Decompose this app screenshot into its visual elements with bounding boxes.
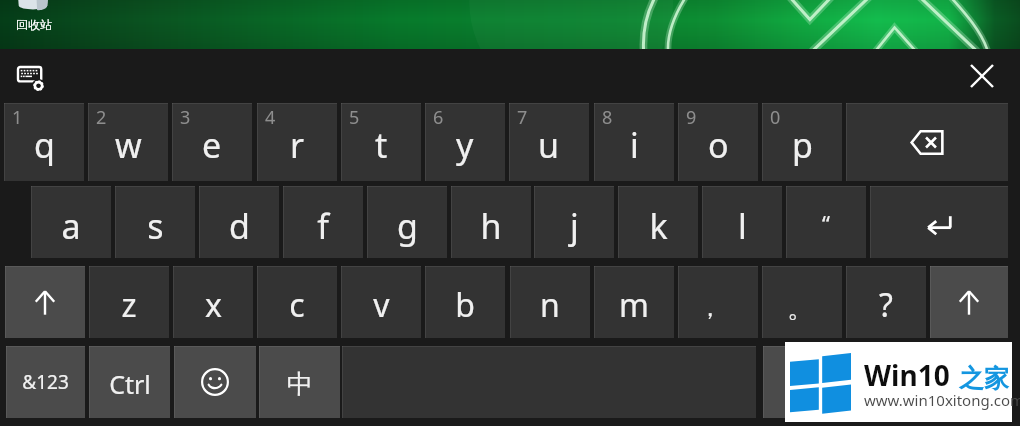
button[interactable]: 7 xyxy=(509,103,589,181)
button[interactable]: ， xyxy=(678,266,758,338)
button[interactable]: ? xyxy=(846,266,926,338)
staticText: 2 xyxy=(96,105,107,130)
button[interactable]: v xyxy=(341,266,421,338)
staticText: www.win10xitong.com xyxy=(864,390,1020,410)
button[interactable]: k xyxy=(618,186,698,258)
button[interactable]: b xyxy=(425,266,505,338)
staticText: x xyxy=(205,283,222,327)
button[interactable]: z xyxy=(89,266,169,338)
button[interactable]: Close xyxy=(958,52,1006,100)
button[interactable]: Emoji xyxy=(174,346,256,418)
staticText: m xyxy=(619,283,649,327)
staticText: ， xyxy=(698,293,722,323)
button[interactable]: 。 xyxy=(762,266,842,338)
button[interactable]: Keyboard settings xyxy=(18,67,45,91)
staticText: 0 xyxy=(770,105,781,130)
button[interactable]: h xyxy=(451,186,531,258)
button[interactable]: 0 xyxy=(762,103,842,181)
staticText: d xyxy=(229,203,250,249)
button[interactable]: &123 xyxy=(6,346,85,418)
button[interactable]: 1 xyxy=(4,103,84,181)
staticText: n xyxy=(540,283,560,327)
staticText: 回收站 xyxy=(16,17,52,32)
staticText: u xyxy=(538,122,560,168)
staticText: &123 xyxy=(22,369,69,395)
button[interactable]: j xyxy=(534,186,614,258)
staticText: 中 xyxy=(287,368,313,401)
button[interactable]: Shift xyxy=(5,266,85,338)
button[interactable]: f xyxy=(283,186,363,258)
staticText: h xyxy=(480,203,502,249)
staticText: i xyxy=(630,122,639,168)
staticText: s xyxy=(147,203,164,249)
staticText: j xyxy=(570,203,579,249)
staticText: g xyxy=(397,203,418,249)
staticText: p xyxy=(792,122,813,168)
button[interactable]: 8 xyxy=(594,103,674,181)
staticText: 之家 xyxy=(959,363,1009,394)
staticText: o xyxy=(708,122,729,168)
staticText: 5 xyxy=(349,105,360,130)
button[interactable]: m xyxy=(594,266,674,338)
staticText: w xyxy=(115,122,142,168)
staticText: Win10 xyxy=(864,356,950,394)
button[interactable]: d xyxy=(199,186,279,258)
staticText: 4 xyxy=(265,105,276,130)
button[interactable]: Arrow up xyxy=(847,346,927,418)
button[interactable]: Arrow left xyxy=(763,346,843,418)
staticText: q xyxy=(34,122,55,168)
staticText: 6 xyxy=(433,105,444,130)
button[interactable]: 4 xyxy=(257,103,337,181)
staticText: 8 xyxy=(602,105,613,130)
button[interactable]: Enter xyxy=(870,186,1008,258)
staticText: l xyxy=(738,203,747,249)
staticText: “ xyxy=(822,208,830,238)
button[interactable]: c xyxy=(257,266,337,338)
button[interactable]: Shift xyxy=(930,266,1008,338)
staticText: c xyxy=(289,283,305,327)
button[interactable]: 9 xyxy=(678,103,758,181)
button[interactable]: Backspace xyxy=(846,103,1008,181)
staticText: e xyxy=(202,122,222,168)
button[interactable]: x xyxy=(173,266,253,338)
staticText: 。 xyxy=(787,292,813,325)
staticText: 3 xyxy=(180,105,191,130)
staticText: 7 xyxy=(517,105,528,130)
button[interactable]: 5 xyxy=(341,103,421,181)
staticText: y xyxy=(456,122,474,168)
staticText: 9 xyxy=(686,105,697,130)
button[interactable]: 3 xyxy=(172,103,252,181)
button[interactable]: Arrow right xyxy=(931,346,1008,418)
button[interactable]: “ xyxy=(786,186,866,258)
staticText: a xyxy=(61,203,81,249)
button[interactable]: s xyxy=(115,186,195,258)
staticText: b xyxy=(455,283,475,327)
button[interactable]: l xyxy=(702,186,782,258)
staticText: t xyxy=(375,122,388,168)
button[interactable]: n xyxy=(510,266,590,338)
button[interactable]: g xyxy=(367,186,447,258)
staticText: k xyxy=(649,203,668,249)
staticText: 1 xyxy=(12,105,23,130)
button[interactable]: a xyxy=(31,186,111,258)
staticText: ? xyxy=(879,283,893,327)
button[interactable]: 中 xyxy=(259,346,340,418)
button[interactable]: 2 xyxy=(88,103,168,181)
staticText: f xyxy=(317,203,329,249)
staticText: v xyxy=(373,283,390,327)
button[interactable]: 6 xyxy=(425,103,505,181)
staticText: r xyxy=(290,122,305,168)
staticText: Ctrl xyxy=(109,367,151,401)
button[interactable]: Ctrl xyxy=(89,346,170,418)
staticText: z xyxy=(121,283,137,327)
